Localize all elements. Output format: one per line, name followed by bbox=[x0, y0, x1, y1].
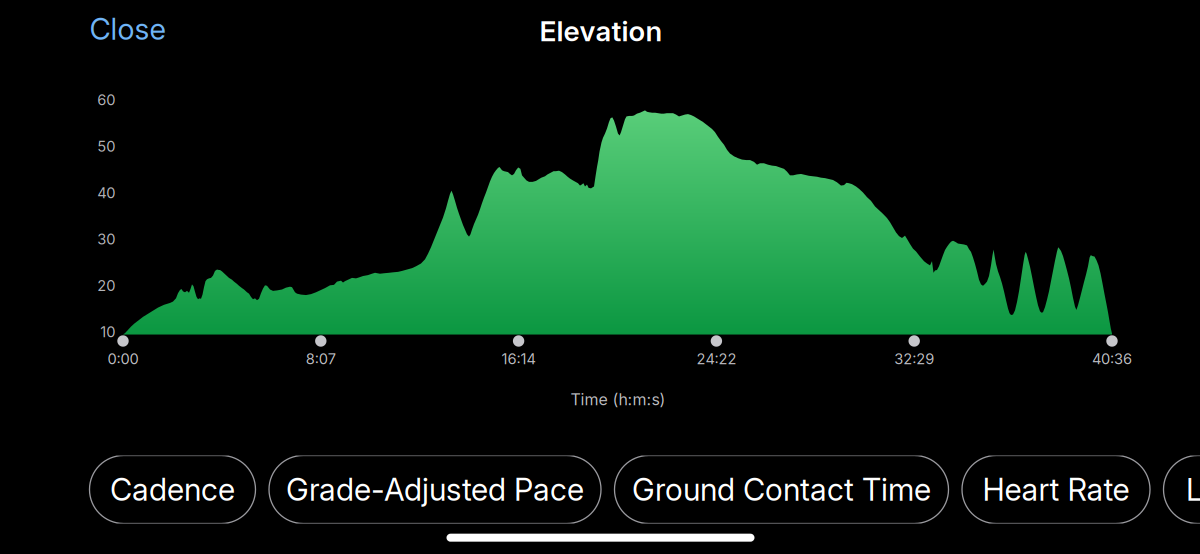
staticText: 24:22 bbox=[696, 350, 736, 368]
staticText: 16:14 bbox=[502, 350, 536, 368]
staticText: Lap bbox=[1186, 471, 1200, 508]
staticText: 40:36 bbox=[1092, 350, 1132, 368]
staticText: 10 bbox=[100, 323, 115, 341]
staticText: 8:07 bbox=[306, 350, 336, 368]
staticText: 40 bbox=[97, 184, 115, 202]
staticText: Heart Rate bbox=[982, 471, 1129, 508]
staticText: Grade-Adjusted Pace bbox=[286, 471, 584, 508]
staticText: 20 bbox=[97, 277, 115, 294]
staticText: 30 bbox=[97, 230, 115, 248]
staticText: Time (h:m:s) bbox=[570, 390, 665, 409]
staticText: Elevation bbox=[539, 14, 662, 48]
button[interactable]: Lap bbox=[1163, 455, 1200, 523]
staticText: Ground Contact Time bbox=[632, 471, 931, 508]
button[interactable]: Close bbox=[82, 7, 172, 51]
staticText: 60 bbox=[97, 91, 115, 109]
staticText: 0:00 bbox=[107, 350, 138, 368]
button[interactable]: Ground Contact Time bbox=[614, 455, 948, 523]
staticText: 32:29 bbox=[894, 350, 934, 368]
staticText: Close bbox=[89, 11, 165, 47]
button[interactable]: Heart Rate bbox=[962, 455, 1150, 523]
button[interactable]: Cadence bbox=[89, 455, 255, 523]
button[interactable]: Grade-Adjusted Pace bbox=[269, 455, 601, 523]
staticText: 50 bbox=[97, 137, 115, 155]
staticText: Cadence bbox=[110, 471, 235, 508]
